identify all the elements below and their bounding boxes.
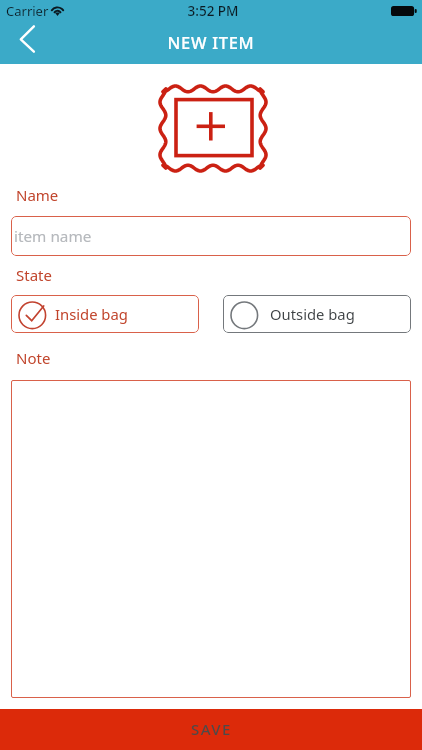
staticText: Inside bag	[55, 304, 128, 324]
staticText: Name	[16, 185, 59, 205]
staticText: State	[16, 265, 52, 285]
button[interactable]	[11, 380, 411, 698]
button[interactable]: item name	[11, 216, 411, 256]
button[interactable]: Outside bag	[223, 295, 411, 333]
staticText: NEW ITEM	[0, 31, 422, 53]
staticText: Outside bag	[270, 304, 355, 324]
staticText: item name	[14, 226, 92, 247]
staticText: 3:52 PM	[2, 2, 422, 20]
button[interactable]: SAVE	[0, 709, 422, 750]
other: Add photo	[158, 84, 268, 173]
button[interactable]: Inside bag	[11, 295, 199, 333]
staticText: Note	[16, 348, 51, 368]
staticText: Carrier	[6, 2, 49, 20]
button[interactable]: Back	[0, 22, 52, 64]
staticText: SAVE	[191, 719, 232, 739]
